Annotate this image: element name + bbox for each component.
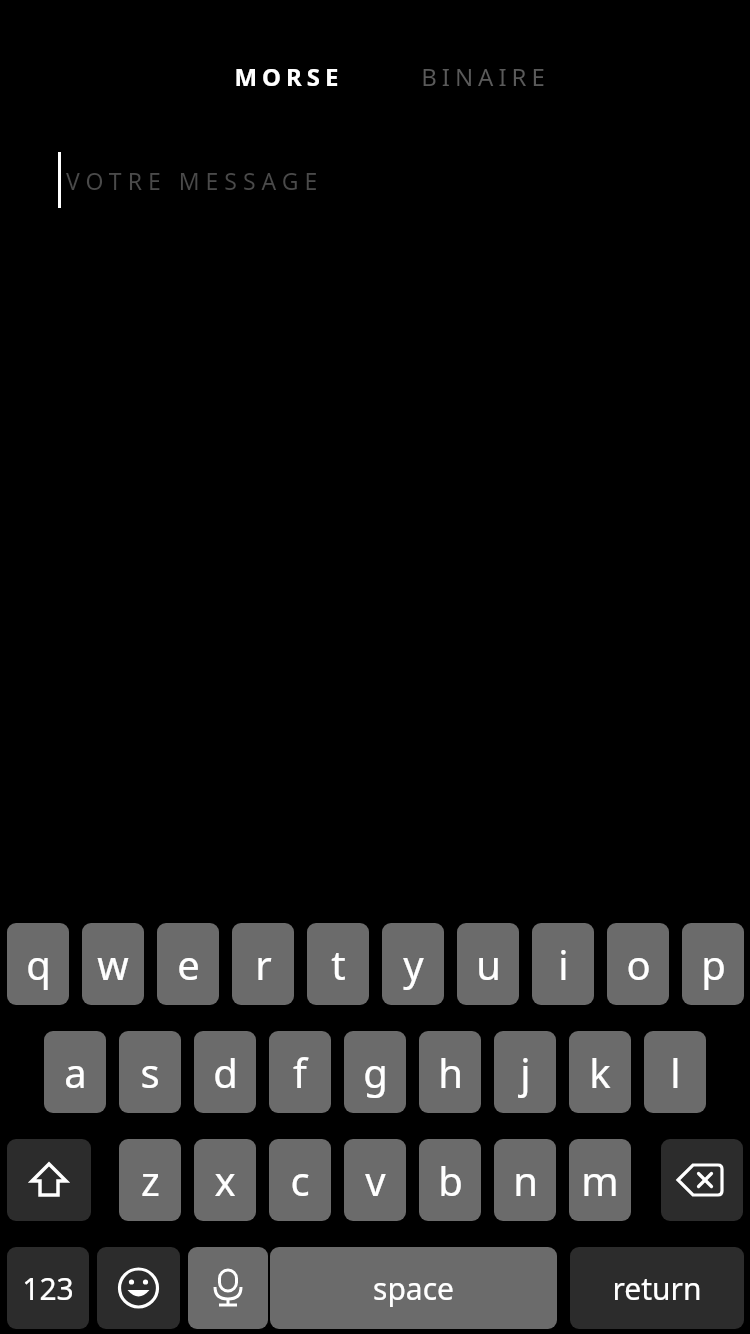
staticText: return bbox=[612, 1268, 702, 1309]
button[interactable]: f bbox=[269, 1031, 331, 1113]
staticText: VOTRE MESSAGE bbox=[66, 165, 324, 196]
staticText: w bbox=[97, 937, 129, 991]
button[interactable]: BINAIRE bbox=[390, 55, 580, 97]
staticText: b bbox=[438, 1153, 463, 1207]
button[interactable]: u bbox=[457, 923, 519, 1005]
staticText: s bbox=[140, 1045, 160, 1099]
staticText: p bbox=[701, 937, 726, 991]
staticText: z bbox=[141, 1153, 160, 1207]
staticText: u bbox=[476, 937, 501, 991]
staticText: d bbox=[213, 1045, 238, 1099]
button[interactable]: k bbox=[569, 1031, 631, 1113]
staticText: o bbox=[626, 937, 651, 991]
button[interactable]: w bbox=[82, 923, 144, 1005]
staticText: m bbox=[581, 1153, 619, 1207]
button[interactable]: v bbox=[344, 1139, 406, 1221]
staticText: j bbox=[520, 1045, 531, 1099]
button[interactable]: o bbox=[607, 923, 669, 1005]
button[interactable]: h bbox=[419, 1031, 481, 1113]
staticText: c bbox=[290, 1153, 310, 1207]
button[interactable]: b bbox=[419, 1139, 481, 1221]
button[interactable]: c bbox=[269, 1139, 331, 1221]
button[interactable]: VOTRE MESSAGE bbox=[40, 140, 710, 220]
button[interactable]: Emoji bbox=[97, 1247, 180, 1329]
button[interactable]: Dictate bbox=[188, 1247, 268, 1329]
staticText: a bbox=[64, 1045, 87, 1099]
button[interactable]: return bbox=[570, 1247, 744, 1329]
staticText: n bbox=[513, 1153, 538, 1207]
button[interactable]: z bbox=[119, 1139, 181, 1221]
button[interactable]: y bbox=[382, 923, 444, 1005]
staticText: q bbox=[26, 937, 51, 991]
button[interactable]: i bbox=[532, 923, 594, 1005]
button[interactable]: d bbox=[194, 1031, 256, 1113]
button[interactable]: q bbox=[7, 923, 69, 1005]
staticText: v bbox=[365, 1153, 386, 1207]
staticText: h bbox=[438, 1045, 463, 1099]
button[interactable]: j bbox=[494, 1031, 556, 1113]
staticText: t bbox=[331, 937, 346, 991]
staticText: r bbox=[255, 937, 272, 991]
button[interactable]: x bbox=[194, 1139, 256, 1221]
button[interactable]: n bbox=[494, 1139, 556, 1221]
staticText: MORSE bbox=[234, 60, 344, 93]
staticText: l bbox=[670, 1045, 681, 1099]
staticText: i bbox=[558, 937, 569, 991]
button[interactable]: l bbox=[644, 1031, 706, 1113]
staticText: 123 bbox=[22, 1268, 74, 1309]
staticText: f bbox=[293, 1045, 307, 1099]
button[interactable]: 123 bbox=[7, 1247, 89, 1329]
button[interactable]: MORSE bbox=[208, 55, 370, 97]
staticText: BINAIRE bbox=[421, 60, 550, 93]
button[interactable]: space bbox=[270, 1247, 557, 1329]
button[interactable]: a bbox=[44, 1031, 106, 1113]
staticText: x bbox=[214, 1153, 236, 1207]
button[interactable]: m bbox=[569, 1139, 631, 1221]
staticText: k bbox=[589, 1045, 611, 1099]
staticText: y bbox=[403, 937, 424, 991]
button[interactable]: r bbox=[232, 923, 294, 1005]
button[interactable]: t bbox=[307, 923, 369, 1005]
staticText: g bbox=[363, 1045, 388, 1099]
button[interactable]: g bbox=[344, 1031, 406, 1113]
button[interactable]: Shift bbox=[7, 1139, 91, 1221]
button[interactable]: s bbox=[119, 1031, 181, 1113]
staticText: space bbox=[373, 1268, 454, 1309]
button[interactable]: Backspace bbox=[661, 1139, 743, 1221]
button[interactable]: p bbox=[682, 923, 744, 1005]
button[interactable]: e bbox=[157, 923, 219, 1005]
staticText: e bbox=[177, 937, 200, 991]
